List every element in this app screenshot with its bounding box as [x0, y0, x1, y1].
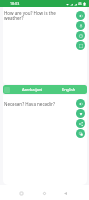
button[interactable]: Home	[39, 188, 49, 198]
button[interactable]: Voice input	[76, 21, 85, 30]
button[interactable]: History	[76, 31, 85, 40]
staticText: English	[62, 87, 76, 92]
button[interactable]: English	[58, 85, 80, 94]
button[interactable]: Speak translation	[76, 99, 85, 108]
button[interactable]: Share	[76, 119, 85, 128]
staticText: 18:03	[10, 1, 20, 6]
button[interactable]: Back	[60, 188, 70, 198]
staticText: Azerbaijani	[22, 87, 43, 92]
button[interactable]: Recent apps	[16, 188, 26, 198]
button[interactable]: Full screen	[76, 41, 85, 50]
staticText: Necəsən? Hava necədir?	[4, 101, 55, 107]
staticText: How are you? How is the weather?	[4, 10, 72, 22]
button[interactable]: Favorite	[76, 109, 85, 118]
button[interactable]: Copy	[76, 129, 85, 138]
button[interactable]: Azerbaijani	[19, 85, 45, 94]
staticText: 46	[78, 2, 82, 6]
button[interactable]: Speak	[76, 11, 85, 20]
